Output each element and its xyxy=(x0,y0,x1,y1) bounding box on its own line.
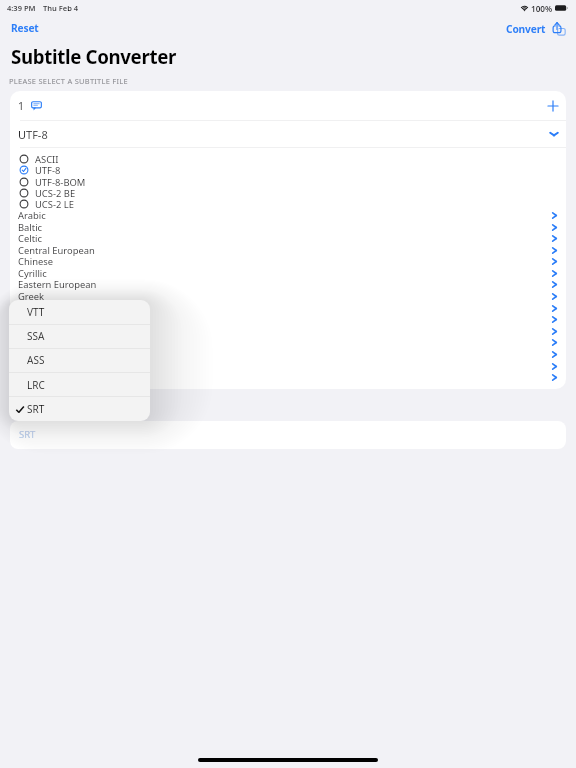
staticText: Celtic xyxy=(18,232,42,244)
staticText: Convert xyxy=(506,22,546,36)
staticText: VTT xyxy=(27,305,45,319)
button[interactable]: Reset xyxy=(11,21,39,35)
staticText: UTF-8 xyxy=(35,164,61,175)
staticText: Cyrillic xyxy=(18,267,47,279)
button[interactable]: Simplified Chinese xyxy=(18,348,557,360)
staticText: 100% xyxy=(531,3,553,14)
button[interactable]: UCS-2 LE xyxy=(19,198,566,209)
staticText: Hebrew xyxy=(18,302,53,314)
button[interactable]: Hebrew xyxy=(18,302,557,314)
button[interactable]: SRT xyxy=(10,421,566,449)
button[interactable]: VTT xyxy=(9,300,150,324)
button[interactable]: SSA xyxy=(9,324,150,348)
staticText: Thai xyxy=(18,360,37,372)
button[interactable]: Japanese xyxy=(18,313,557,325)
staticText: Japanese xyxy=(18,313,58,325)
staticText: Chinese xyxy=(18,255,54,267)
staticText: SRT xyxy=(19,428,36,441)
staticText: LRC xyxy=(27,378,45,392)
staticText: Thu Feb 4 xyxy=(43,3,79,13)
staticText: 1 xyxy=(18,99,25,113)
button[interactable]: Eastern European xyxy=(18,278,557,290)
other: Share xyxy=(552,21,566,36)
staticText: Reset xyxy=(11,21,39,35)
button[interactable]: Baltic xyxy=(18,221,557,233)
staticText: Traditional Chinese xyxy=(18,371,103,383)
button[interactable]: UTF-8-BOM xyxy=(19,176,566,187)
button[interactable]: SRT xyxy=(9,397,150,421)
staticText: ASS xyxy=(27,353,45,367)
staticText: UTF-8-BOM xyxy=(35,176,86,187)
button[interactable]: Chinese xyxy=(18,255,557,267)
staticText: Simplified Chinese xyxy=(18,348,100,360)
button[interactable]: Thai xyxy=(18,360,557,372)
staticText: SRT xyxy=(27,402,45,416)
button[interactable]: Traditional Chinese xyxy=(18,371,557,383)
staticText: UCS-2 BE xyxy=(35,187,76,198)
button[interactable]: Central European xyxy=(18,244,557,256)
button[interactable]: Celtic xyxy=(18,232,557,244)
staticText: UCS-2 LE xyxy=(35,198,74,209)
button[interactable]: LRC xyxy=(9,373,150,397)
button[interactable]: UTF-8 xyxy=(18,121,559,147)
button[interactable]: 1 xyxy=(18,91,562,120)
staticText: Eastern European xyxy=(18,278,97,290)
button[interactable]: Convert xyxy=(506,21,566,36)
staticText: UTF-8 xyxy=(18,127,48,142)
staticText: Arabic xyxy=(18,209,46,221)
button[interactable]: Korean xyxy=(18,325,557,337)
button[interactable]: UTF-8 xyxy=(19,164,566,175)
staticText: ASCII xyxy=(35,153,59,164)
button[interactable]: Greek xyxy=(18,290,557,302)
button[interactable]: UCS-2 BE xyxy=(19,187,566,198)
staticText: 4:39 PM xyxy=(7,3,36,13)
button[interactable]: Nordic xyxy=(18,336,557,348)
button[interactable]: Add file xyxy=(543,96,562,115)
staticText: Baltic xyxy=(18,221,43,233)
staticText: Central European xyxy=(18,244,95,256)
button[interactable]: ASCII xyxy=(19,153,566,164)
button[interactable]: Arabic xyxy=(18,209,557,221)
button[interactable]: Cyrillic xyxy=(18,267,557,279)
staticText: Korean xyxy=(18,325,50,337)
button[interactable]: ASS xyxy=(9,348,150,372)
staticText: Subtitle Converter xyxy=(11,44,176,69)
staticText: PLEASE SELECT A SUBTITLE FILE xyxy=(9,76,128,86)
other: Expand xyxy=(549,131,559,137)
staticText: Nordic xyxy=(18,336,48,348)
staticText: Greek xyxy=(18,290,45,302)
staticText: SSA xyxy=(27,329,45,343)
